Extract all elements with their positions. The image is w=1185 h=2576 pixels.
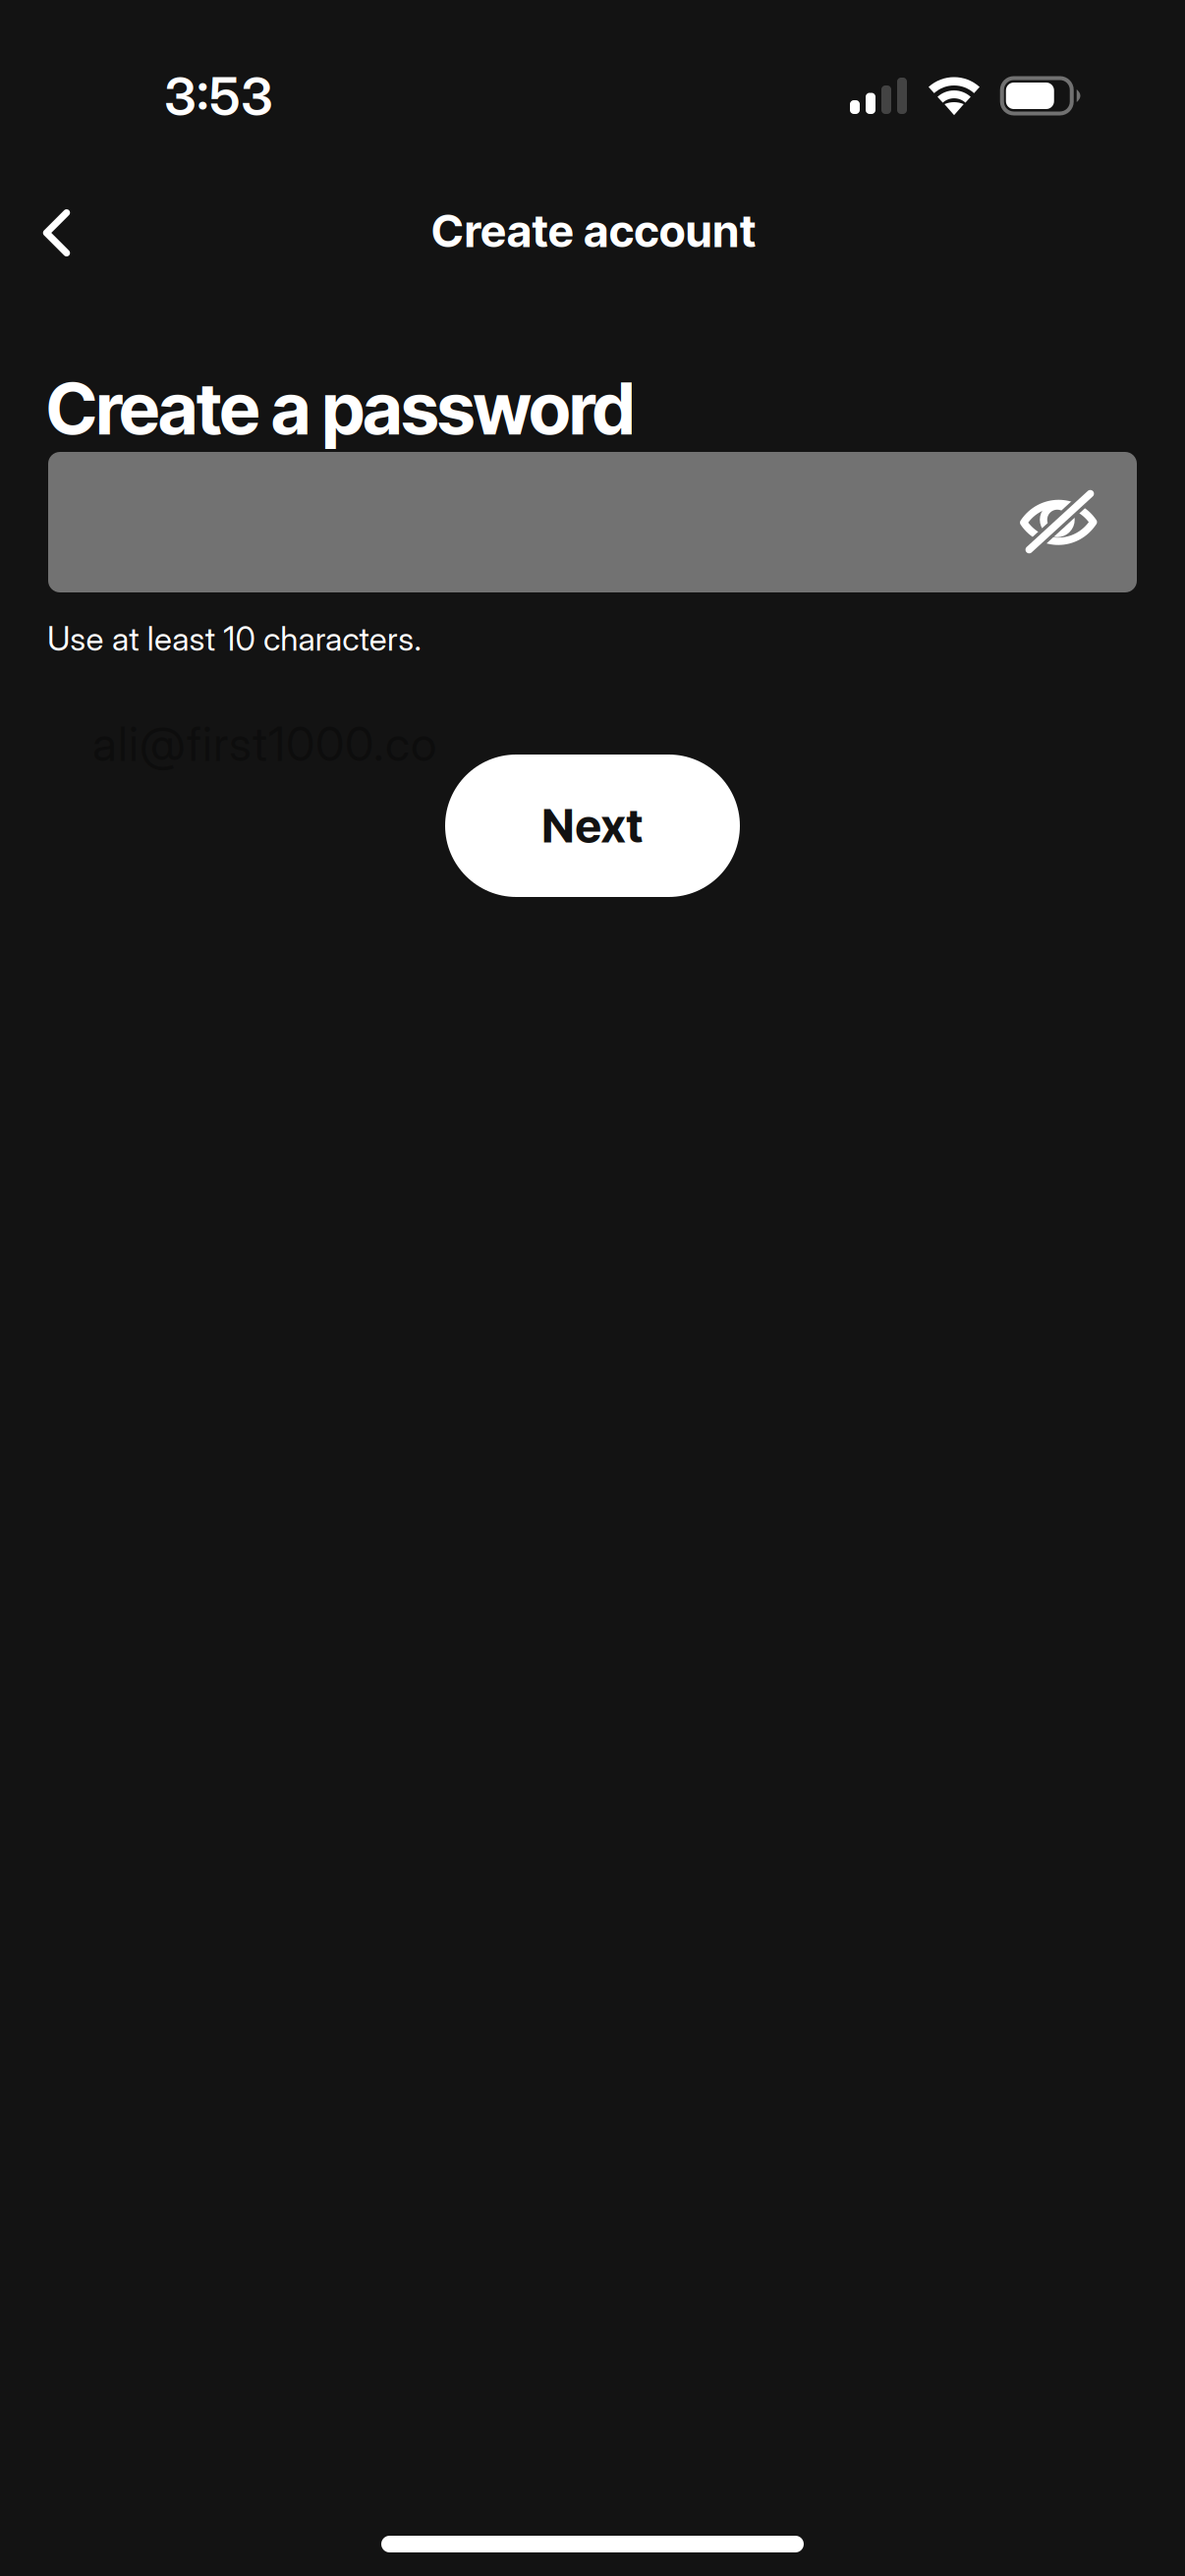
staticText: Next bbox=[542, 798, 643, 854]
staticText: 3:53 bbox=[164, 65, 273, 128]
staticText: Create account bbox=[431, 204, 756, 258]
button[interactable]: Next bbox=[445, 755, 740, 897]
button[interactable]: Show password bbox=[988, 453, 1129, 593]
staticText: Create a password bbox=[46, 366, 635, 451]
button[interactable]: Back bbox=[9, 186, 104, 280]
staticText: Use at least 10 characters. bbox=[47, 619, 421, 658]
